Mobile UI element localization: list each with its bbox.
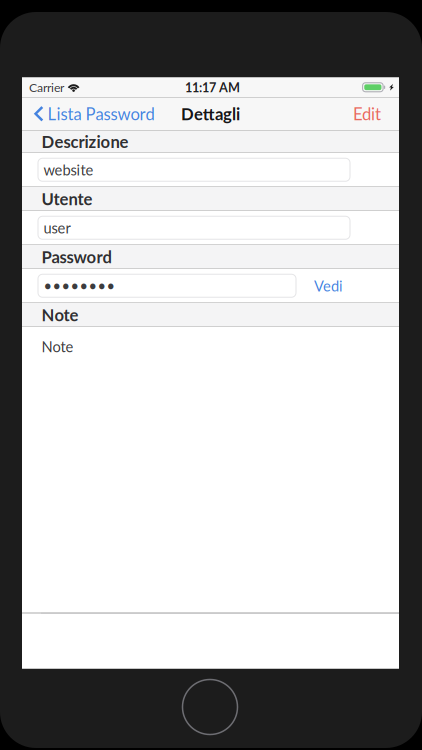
staticText: website — [43, 161, 93, 178]
staticText: •••••••• — [43, 277, 115, 294]
staticText: 11:17 AM — [185, 80, 240, 95]
staticText: Lista Password — [47, 104, 154, 124]
staticText: Utente — [41, 189, 92, 209]
staticText: Carrier — [29, 80, 64, 95]
staticText: Note — [41, 338, 73, 355]
staticText: Password — [41, 247, 111, 267]
button[interactable]: Vedi — [296, 269, 361, 303]
staticText: Descrizione — [41, 131, 128, 151]
staticText: Vedi — [314, 277, 343, 294]
staticText: Edit — [353, 104, 381, 124]
staticText: Note — [41, 305, 78, 325]
staticText: user — [43, 219, 70, 236]
staticText: Dettagli — [181, 104, 240, 124]
button[interactable]: Edit — [343, 97, 399, 130]
button[interactable]: Lista Password — [22, 97, 162, 130]
